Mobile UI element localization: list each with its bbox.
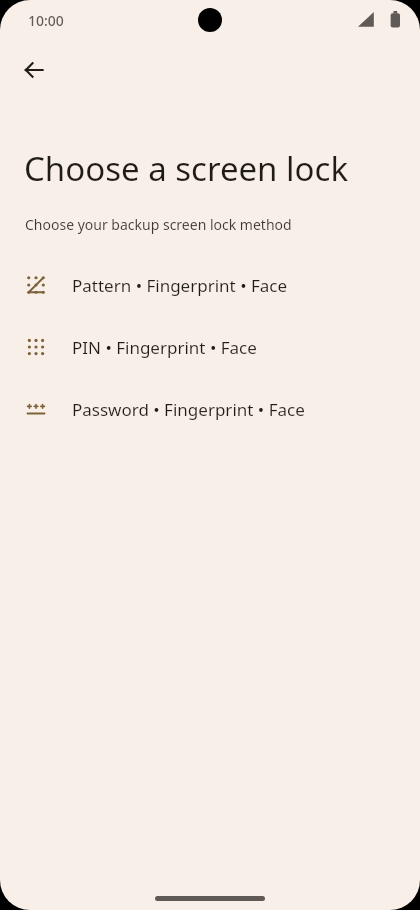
staticText: Choose your backup screen lock method xyxy=(25,215,292,234)
staticText: Password • Fingerprint • Face xyxy=(72,398,305,421)
button[interactable]: Pattern • Fingerprint • Face xyxy=(0,270,420,300)
button[interactable]: Password • Fingerprint • Face xyxy=(0,394,420,424)
staticText: 10:00 xyxy=(28,11,64,30)
staticText: Choose a screen lock xyxy=(24,146,349,191)
staticText: Pattern • Fingerprint • Face xyxy=(72,274,288,297)
button[interactable]: PIN • Fingerprint • Face xyxy=(0,332,420,362)
button[interactable]: Back xyxy=(10,46,58,94)
staticText: PIN • Fingerprint • Face xyxy=(72,336,257,359)
